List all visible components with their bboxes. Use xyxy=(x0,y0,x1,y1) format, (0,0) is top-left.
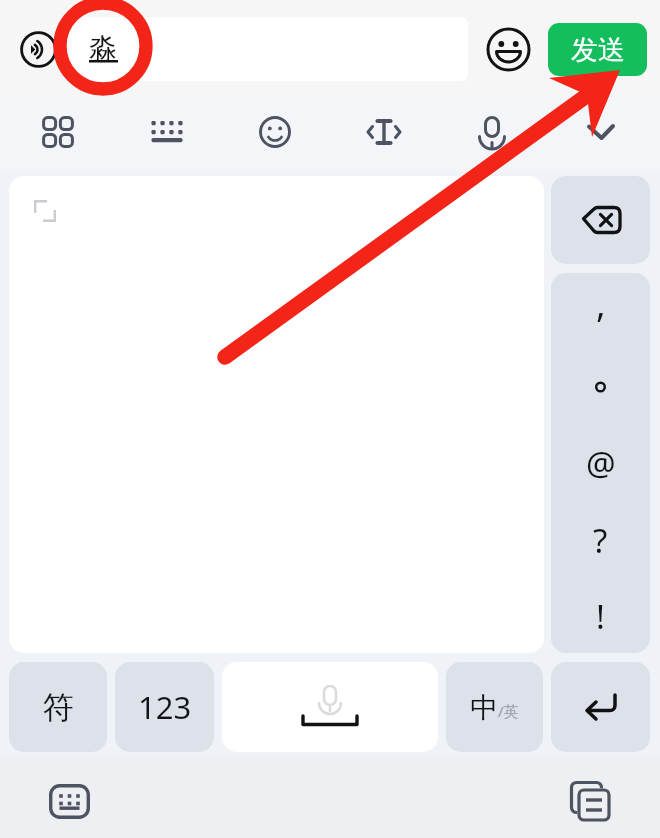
staticText: 中 xyxy=(470,690,498,725)
button[interactable]: Apps xyxy=(32,106,84,158)
button[interactable]: @ xyxy=(551,425,650,501)
button[interactable]: Space xyxy=(222,662,438,752)
button[interactable]: ! xyxy=(551,578,650,653)
button[interactable]: Emoji xyxy=(486,27,531,72)
button[interactable]: Backspace xyxy=(551,176,650,264)
button[interactable]: Stickers xyxy=(249,106,301,158)
button[interactable]: Voice message xyxy=(20,31,57,68)
staticText: @ xyxy=(586,441,616,486)
staticText: ? xyxy=(593,518,608,563)
button[interactable]: 。 xyxy=(551,349,650,425)
staticText: ! xyxy=(596,594,605,639)
staticText: , xyxy=(596,279,606,328)
button[interactable]: 中 xyxy=(446,662,543,752)
staticText: 发送 xyxy=(571,33,625,67)
button[interactable]: ? xyxy=(551,502,650,578)
button[interactable]: Keyboard xyxy=(141,106,193,158)
staticText: 符 xyxy=(43,688,74,727)
button[interactable]: 123 xyxy=(115,662,214,752)
button[interactable]: Voice input xyxy=(466,106,518,158)
button[interactable]: 符 xyxy=(9,662,107,752)
button[interactable]: Clipboard xyxy=(565,776,615,826)
button[interactable]: 淼 xyxy=(66,17,468,81)
button[interactable]: 发送 xyxy=(548,23,647,76)
button[interactable]: Enter xyxy=(551,662,650,752)
button[interactable]: Switch keyboard xyxy=(44,776,94,826)
staticText: 123 xyxy=(138,686,192,728)
button[interactable] xyxy=(9,176,544,653)
staticText: 淼 xyxy=(89,31,117,66)
button[interactable]: , xyxy=(551,273,650,349)
button[interactable]: Edit text xyxy=(358,106,410,158)
staticText: /英 xyxy=(498,701,519,721)
button[interactable]: Collapse keyboard xyxy=(575,106,627,158)
